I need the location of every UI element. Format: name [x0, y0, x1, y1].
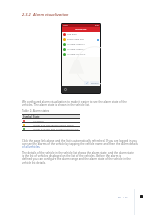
staticText: All data: search 2: [67, 48, 99, 51]
button[interactable]: All data: search 3: [62, 52, 100, 57]
staticText: Alarm is in the vehicle and is being act…: [33, 123, 80, 126]
button[interactable]: Refresh: [90, 81, 99, 85]
staticText: State: [33, 115, 40, 118]
staticText: 10:41: [63, 24, 69, 27]
button[interactable]: Home: [64, 88, 67, 91]
staticText: Table 2: Alarm states: [22, 109, 50, 113]
staticText: vehicle list details.: [22, 161, 46, 165]
staticText: defined you can configure the alarm rang…: [22, 157, 131, 161]
staticText: 84%: [95, 24, 99, 27]
staticText: Trip data: [67, 33, 99, 36]
staticText: Refresh: [91, 82, 99, 85]
staticText: EN | 21: [118, 195, 128, 198]
staticText: Alarm is active and is searching for the…: [33, 127, 80, 130]
staticText: No alarm: [33, 119, 44, 122]
staticText: Click the page link above and the list i…: [22, 139, 137, 143]
staticText: of all vehicles.: [22, 145, 41, 149]
button[interactable]: All data: search 2: [62, 47, 100, 52]
staticText: vehicles. The alarm state is shown in th…: [22, 103, 90, 107]
staticText: The details of the vehicle in the vehicl…: [22, 151, 134, 155]
button[interactable]: Driver data one: [62, 37, 100, 42]
staticText: All data: search 3: [67, 53, 99, 56]
staticText: is the list of vehicles displayed on the…: [22, 154, 122, 158]
staticText: 2.3.2 Alarm visualization: [22, 12, 69, 17]
button[interactable]: All data: search 1: [62, 42, 100, 47]
staticText: Driver data one: [67, 38, 97, 41]
staticText: Vehicle list: [75, 28, 87, 31]
button[interactable]: Confirm: [84, 81, 89, 85]
staticText: can see the alarms of the vehicle by tap…: [22, 142, 138, 146]
staticText: All data: search 1: [67, 43, 99, 46]
staticText: Symbol: [23, 115, 33, 118]
button[interactable]: Trip data: [62, 32, 100, 37]
staticText: We configured alarm visualization to mak…: [22, 100, 127, 104]
